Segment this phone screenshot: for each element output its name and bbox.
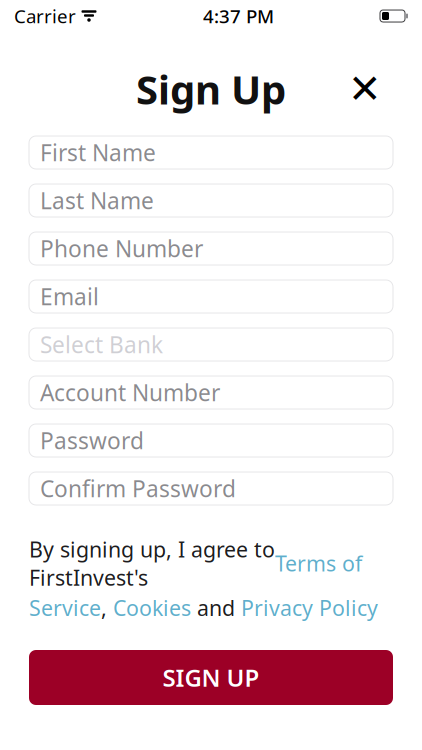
button[interactable]: Account Number <box>29 376 393 409</box>
staticText: Privacy Policy <box>241 594 378 622</box>
staticText: First Name <box>40 137 156 167</box>
staticText: Terms of <box>275 549 362 577</box>
button[interactable]: Cookies <box>113 594 191 622</box>
staticText: Select Bank <box>40 329 163 359</box>
button[interactable]: Confirm Password <box>29 472 393 505</box>
button[interactable]: SIGN UP <box>29 650 393 705</box>
staticText: 4:37 PM <box>203 4 274 28</box>
button[interactable]: Last Name <box>29 184 393 217</box>
button[interactable]: First Name <box>29 136 393 169</box>
staticText: Service <box>29 594 101 622</box>
button[interactable]: Email <box>29 280 393 313</box>
staticText: , <box>101 594 113 622</box>
staticText: and <box>191 594 241 622</box>
button[interactable]: Service <box>29 594 101 622</box>
staticText: SIGN UP <box>162 662 259 693</box>
staticText: Confirm Password <box>40 473 236 503</box>
button[interactable]: Select Bank <box>29 328 393 361</box>
button[interactable]: Phone Number <box>29 232 393 265</box>
staticText: Sign Up <box>136 62 286 115</box>
button[interactable]: Password <box>29 424 393 457</box>
staticText: Phone Number <box>40 233 203 263</box>
button[interactable]: Close <box>340 64 390 114</box>
staticText: ✕ <box>348 66 382 112</box>
button[interactable]: Privacy Policy <box>241 594 378 622</box>
staticText: Account Number <box>40 377 220 407</box>
staticText: Cookies <box>113 594 191 622</box>
staticText: Email <box>40 281 99 311</box>
staticText: Last Name <box>40 185 154 215</box>
button[interactable]: Terms of <box>275 549 362 577</box>
staticText: Password <box>40 425 144 455</box>
staticText: By signing up, I agree to FirstInvest's <box>29 535 275 592</box>
staticText: Carrier <box>14 4 76 28</box>
